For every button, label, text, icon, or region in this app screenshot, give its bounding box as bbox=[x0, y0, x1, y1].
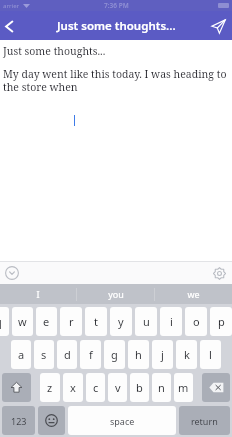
button[interactable]: c bbox=[86, 373, 105, 402]
button[interactable]: e bbox=[36, 307, 57, 336]
button[interactable]: Shift bbox=[2, 373, 31, 402]
staticText: f bbox=[89, 347, 93, 362]
button[interactable]: Emoji bbox=[38, 406, 65, 435]
staticText: w bbox=[18, 314, 27, 329]
staticText: 7:36 PM bbox=[104, 1, 129, 10]
button[interactable]: p bbox=[210, 307, 232, 336]
button[interactable]: h bbox=[128, 340, 149, 369]
button[interactable]: n bbox=[152, 373, 171, 402]
button[interactable]: t bbox=[85, 307, 107, 336]
staticText: n bbox=[158, 380, 165, 395]
staticText: q bbox=[0, 314, 2, 329]
staticText: z bbox=[47, 380, 53, 395]
button[interactable]: v bbox=[108, 373, 127, 402]
staticText: j bbox=[161, 347, 164, 362]
button[interactable]: b bbox=[130, 373, 149, 402]
button[interactable]: r bbox=[60, 307, 82, 336]
button[interactable]: space bbox=[68, 406, 176, 435]
button[interactable]: we bbox=[155, 284, 232, 304]
staticText: m bbox=[178, 380, 189, 395]
staticText: g bbox=[111, 347, 118, 362]
staticText: t bbox=[94, 314, 98, 329]
button[interactable]: z bbox=[40, 373, 60, 402]
staticText: c bbox=[93, 380, 99, 395]
staticText: Just some thoughts... bbox=[3, 44, 106, 58]
button[interactable]: Backspace bbox=[202, 373, 230, 402]
staticText: My day went like this today. I was headi… bbox=[3, 67, 228, 94]
button[interactable]: s bbox=[34, 340, 54, 369]
staticText: return bbox=[191, 415, 218, 427]
button[interactable]: o bbox=[185, 307, 207, 336]
staticText: s bbox=[41, 347, 47, 362]
button[interactable]: x bbox=[63, 373, 83, 402]
button[interactable]: w bbox=[12, 307, 33, 336]
staticText: a bbox=[18, 347, 25, 362]
staticText: d bbox=[64, 347, 71, 362]
staticText: v bbox=[115, 380, 121, 395]
staticText: o bbox=[193, 314, 200, 329]
staticText: i bbox=[170, 314, 173, 329]
button[interactable]: m bbox=[174, 373, 193, 402]
button[interactable]: a bbox=[11, 340, 31, 369]
button[interactable]: u bbox=[135, 307, 157, 336]
button[interactable]: l bbox=[200, 340, 221, 369]
staticText: y bbox=[118, 314, 124, 329]
button[interactable]: i bbox=[160, 307, 182, 336]
button[interactable]: q bbox=[0, 307, 9, 336]
staticText: r bbox=[69, 314, 74, 329]
staticText: e bbox=[43, 314, 50, 329]
staticText: b bbox=[136, 380, 143, 395]
staticText: x bbox=[70, 380, 76, 395]
staticText: p bbox=[218, 314, 225, 329]
button[interactable]: you bbox=[77, 284, 154, 304]
button[interactable]: Back bbox=[0, 13, 26, 39]
staticText: Just some thoughts... bbox=[57, 18, 176, 34]
button[interactable]: return bbox=[179, 406, 230, 435]
button[interactable]: Hide keyboard bbox=[4, 265, 20, 281]
button[interactable]: I bbox=[0, 284, 76, 304]
button[interactable]: g bbox=[104, 340, 125, 369]
staticText: arrier bbox=[3, 2, 20, 10]
button[interactable]: Send bbox=[204, 12, 232, 40]
button[interactable]: f bbox=[80, 340, 101, 369]
staticText: we bbox=[187, 288, 200, 300]
button[interactable]: k bbox=[176, 340, 197, 369]
staticText: space bbox=[110, 415, 135, 427]
staticText: you bbox=[108, 288, 124, 300]
button[interactable]: d bbox=[57, 340, 77, 369]
staticText: u bbox=[143, 314, 150, 329]
staticText: 123 bbox=[11, 415, 27, 427]
button[interactable]: Keyboard settings bbox=[211, 265, 227, 281]
button[interactable]: 123 bbox=[2, 406, 35, 435]
button[interactable]: j bbox=[152, 340, 173, 369]
button[interactable]: y bbox=[110, 307, 132, 336]
staticText: l bbox=[209, 347, 212, 362]
staticText: I bbox=[36, 288, 40, 300]
staticText: h bbox=[135, 347, 142, 362]
staticText: k bbox=[184, 347, 190, 362]
